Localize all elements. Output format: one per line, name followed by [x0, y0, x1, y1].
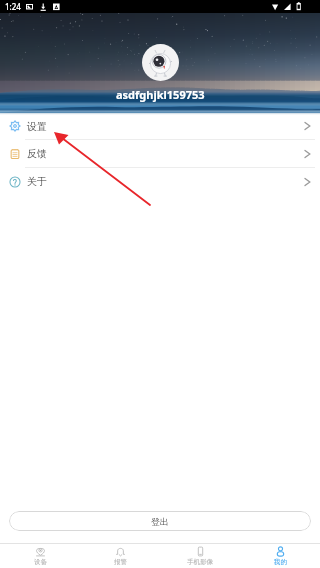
- staticText: 登出: [151, 516, 169, 527]
- button[interactable]: 登出: [9, 511, 311, 531]
- staticText: 关于: [27, 175, 47, 188]
- button[interactable]: 反馈: [0, 140, 320, 167]
- button[interactable]: 设置: [0, 113, 320, 139]
- button[interactable]: 关于: [0, 168, 320, 195]
- staticText: 设备: [34, 558, 47, 566]
- button[interactable]: 手机影像: [160, 544, 240, 568]
- staticText: 1:24: [5, 1, 21, 12]
- staticText: 报警: [114, 558, 127, 566]
- staticText: 手机影像: [187, 558, 213, 566]
- staticText: 我的: [274, 558, 287, 566]
- button[interactable]: 我的: [240, 544, 320, 568]
- button[interactable]: Avatar: [142, 44, 179, 81]
- button[interactable]: 设备: [0, 544, 80, 568]
- staticText: asdfghjkl159753: [116, 87, 205, 102]
- staticText: 设置: [27, 120, 47, 133]
- staticText: 反馈: [27, 147, 47, 160]
- button[interactable]: 报警: [80, 544, 160, 568]
